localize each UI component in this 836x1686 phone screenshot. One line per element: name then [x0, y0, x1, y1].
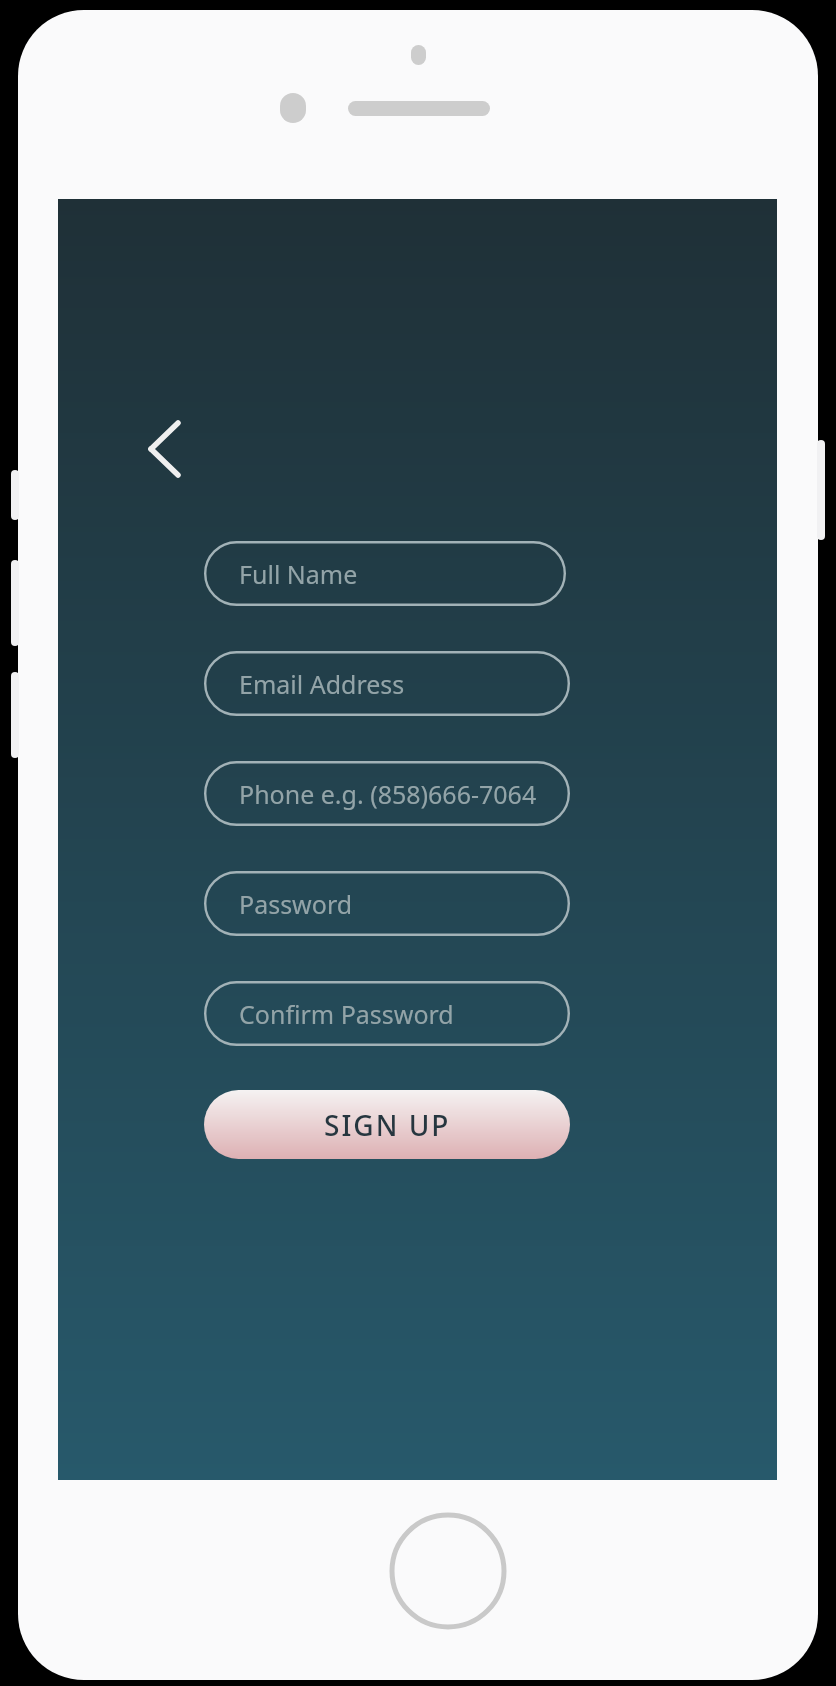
button[interactable]: Back [112, 391, 216, 507]
button[interactable]: SIGN UP [204, 1090, 570, 1159]
button[interactable]: Phone e.g. (858)666-7064 [204, 761, 570, 826]
staticText: Confirm Password [239, 997, 454, 1031]
staticText: Phone e.g. (858)666-7064 [239, 777, 537, 811]
button[interactable]: Password [204, 871, 570, 936]
staticText: Password [239, 887, 353, 921]
staticText: Email Address [239, 667, 405, 701]
button[interactable]: Home [389, 1512, 507, 1630]
button[interactable]: Email Address [204, 651, 570, 716]
button[interactable]: Full Name [204, 541, 566, 606]
button[interactable]: Confirm Password [204, 981, 570, 1046]
staticText: Full Name [239, 557, 358, 591]
staticText: SIGN UP [324, 1106, 451, 1144]
